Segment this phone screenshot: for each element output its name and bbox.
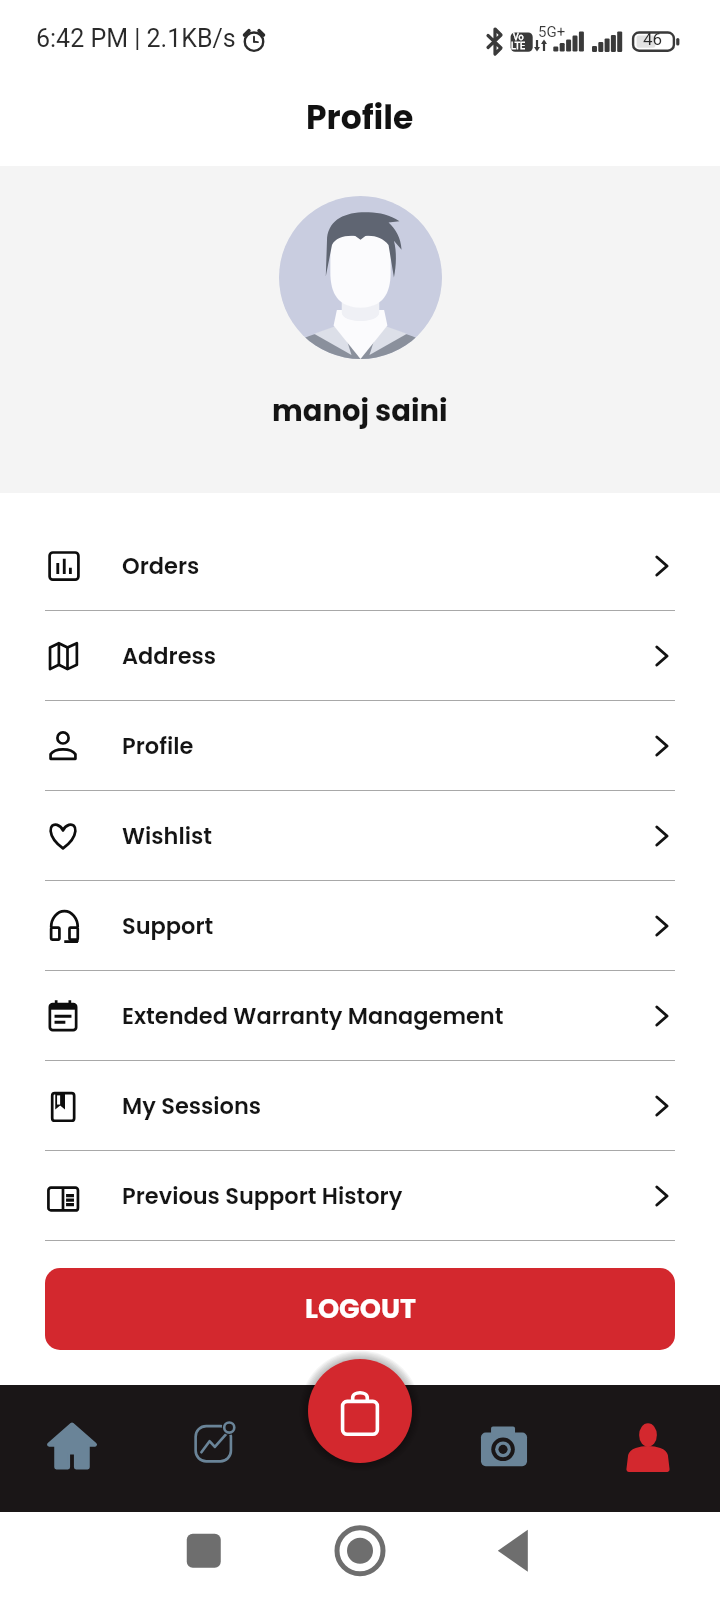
- staticText: Previous Support History: [122, 1180, 403, 1211]
- staticText: LOGOUT: [305, 1290, 416, 1328]
- staticText: Address: [122, 640, 217, 671]
- staticText: Extended Warranty Management: [122, 1000, 504, 1031]
- button[interactable]: Extended Warranty Management: [0, 971, 720, 1061]
- button[interactable]: Insights: [165, 1385, 269, 1512]
- button[interactable]: Address: [0, 611, 720, 701]
- staticText: manoj saini: [272, 391, 448, 432]
- staticText: Support: [122, 910, 214, 941]
- staticText: My Sessions: [122, 1090, 262, 1121]
- staticText: Profile: [122, 730, 194, 761]
- staticText: Vo: [513, 32, 524, 43]
- button[interactable]: Camera: [452, 1385, 556, 1512]
- staticText: Orders: [122, 550, 200, 581]
- button[interactable]: LOGOUT: [45, 1268, 675, 1350]
- button[interactable]: Orders: [0, 521, 720, 611]
- button[interactable]: Home: [20, 1385, 124, 1512]
- staticText: 6:42 PM | 2.1KB/s: [36, 24, 236, 53]
- button[interactable]: Shop: [308, 1359, 412, 1463]
- button[interactable]: Profile: [596, 1385, 700, 1512]
- staticText: Profile: [306, 94, 414, 140]
- button[interactable]: Previous Support History: [0, 1151, 720, 1241]
- staticText: 46: [643, 29, 663, 49]
- button[interactable]: Profile: [0, 701, 720, 791]
- button[interactable]: Wishlist: [0, 791, 720, 881]
- button[interactable]: Support: [0, 881, 720, 971]
- staticText: 5G+: [538, 23, 566, 41]
- button[interactable]: My Sessions: [0, 1061, 720, 1151]
- staticText: Wishlist: [122, 820, 212, 851]
- staticText: LTE: [511, 41, 526, 52]
